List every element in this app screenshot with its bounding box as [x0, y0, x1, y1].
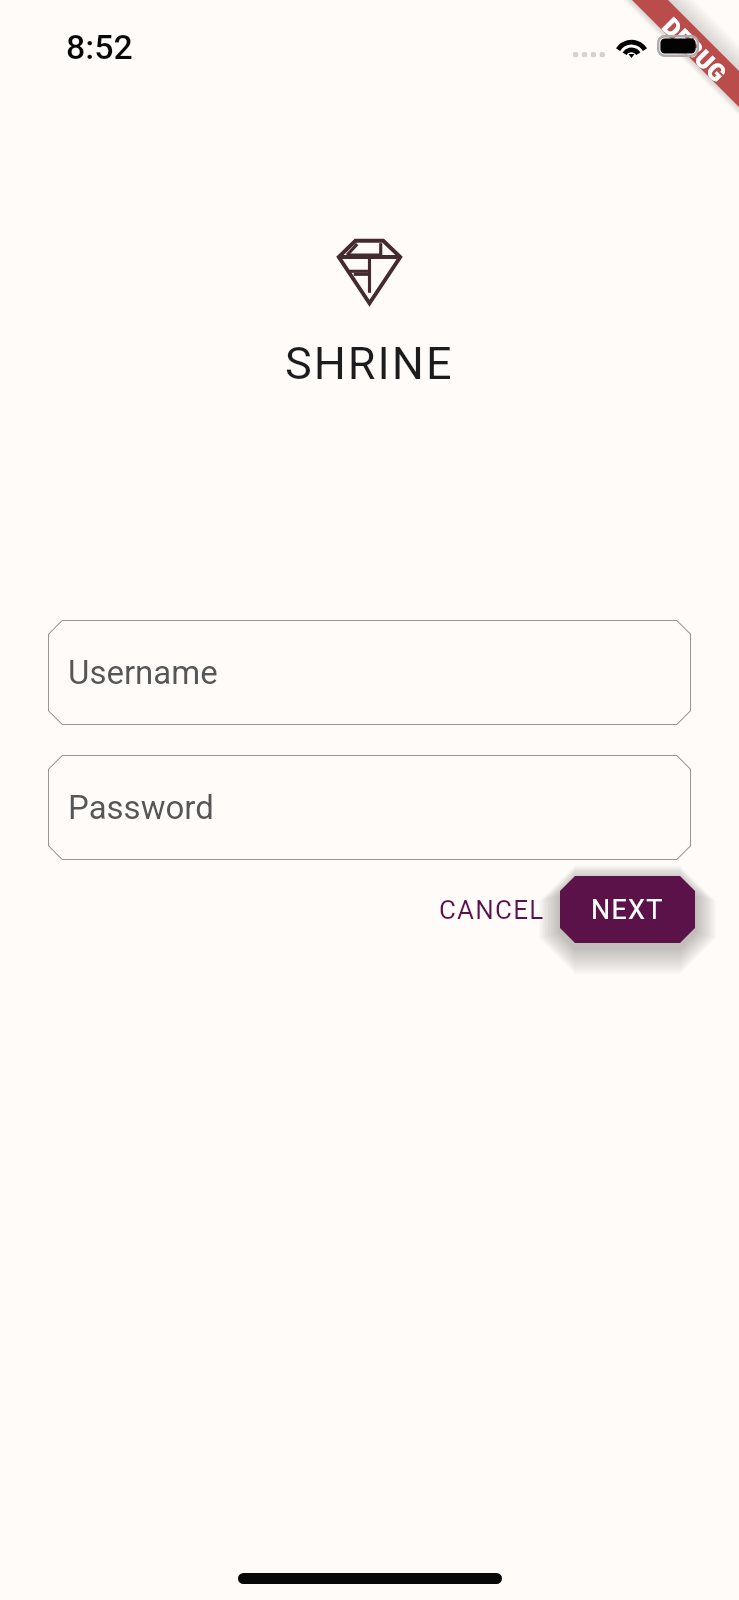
staticText: NEXT [591, 894, 664, 926]
staticText: DEBUG [656, 12, 732, 88]
button[interactable]: NEXT [560, 876, 695, 943]
other: Shrine logo [338, 240, 401, 304]
other: Wi-Fi signal [616, 35, 647, 58]
staticText: Password [68, 788, 214, 827]
staticText: 8:52 [66, 27, 133, 67]
staticText: CANCEL [439, 895, 545, 925]
button[interactable]: Password [48, 755, 691, 860]
staticText: Username [68, 653, 218, 692]
button[interactable]: Username [48, 620, 691, 725]
staticText: SHRINE [285, 337, 454, 390]
button[interactable]: CANCEL [424, 876, 560, 943]
other: Battery full [657, 35, 699, 57]
